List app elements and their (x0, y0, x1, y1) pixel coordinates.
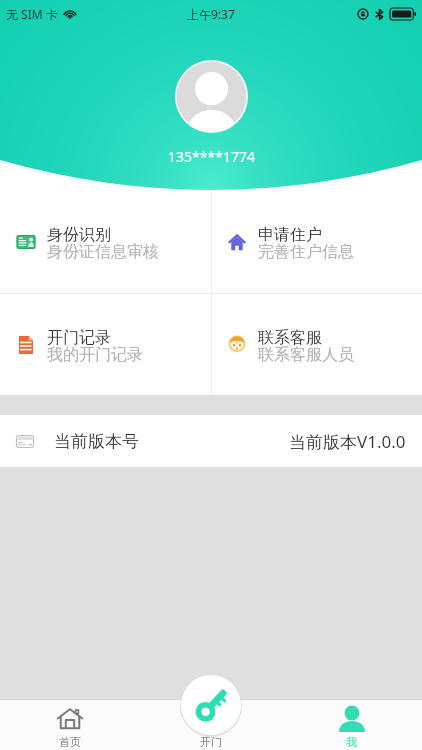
staticText: 当前版本号 (54, 431, 139, 452)
button[interactable]: 联系客服 (211, 294, 422, 395)
staticText: 开门记录 (47, 328, 111, 348)
staticText: 135****1774 (168, 147, 255, 166)
staticText: 开门 (200, 735, 222, 749)
staticText: 完善住户信息 (258, 242, 354, 262)
button[interactable]: 首页 (0, 699, 140, 750)
staticText: 身份证信息审核 (47, 242, 159, 262)
staticText: 申请住户 (258, 225, 322, 245)
staticText: 我的开门记录 (47, 345, 143, 365)
button[interactable]: 申请住户 (211, 191, 422, 293)
button[interactable]: 开门记录 (0, 294, 211, 395)
button[interactable]: 身份识别 (0, 191, 211, 293)
button[interactable]: 我 (281, 699, 422, 750)
staticText: 无 SIM 卡 (6, 6, 58, 22)
staticText: 联系客服 (258, 328, 322, 348)
staticText: 首页 (59, 735, 81, 749)
button[interactable]: 开门 (180, 674, 242, 736)
staticText: 当前版本V1.0.0 (289, 430, 406, 453)
staticText: 我 (346, 735, 357, 749)
staticText: 上午9:37 (187, 6, 235, 22)
staticText: 联系客服人员 (258, 345, 354, 365)
button[interactable]: 当前版本号 (0, 415, 422, 467)
staticText: 身份识别 (47, 225, 111, 245)
